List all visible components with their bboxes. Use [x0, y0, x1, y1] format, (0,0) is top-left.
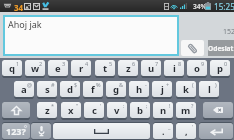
button[interactable]: c [84, 102, 104, 118]
staticText: ? [191, 102, 194, 109]
button[interactable]: h [129, 81, 149, 97]
staticText: b [137, 104, 144, 117]
staticText: m [181, 104, 191, 117]
staticText: n [160, 104, 167, 117]
staticText: t [103, 62, 108, 75]
button[interactable]: z [37, 102, 57, 118]
staticText: 6 [132, 60, 136, 67]
button[interactable]: o [187, 60, 207, 76]
staticText: c [92, 104, 97, 117]
button[interactable]: t [95, 60, 115, 76]
button[interactable]: Backspace [203, 102, 233, 118]
staticText: Odeslat [208, 44, 234, 53]
staticText: % [96, 81, 101, 88]
staticText: 9 [201, 60, 205, 67]
staticText: 123? [6, 125, 26, 137]
button[interactable]: r [71, 60, 91, 76]
staticText: _ [168, 123, 171, 130]
button[interactable]: u [141, 60, 161, 76]
staticText: & [119, 81, 124, 88]
staticText: . [162, 125, 165, 137]
staticText: j [161, 83, 164, 96]
button[interactable]: l [199, 81, 219, 97]
staticText: 1 [16, 60, 20, 67]
button[interactable]: e [48, 60, 68, 76]
staticText: k [183, 83, 189, 96]
staticText: , [185, 125, 188, 137]
button[interactable]: v [107, 102, 127, 118]
staticText: q [9, 62, 16, 75]
button[interactable]: j [152, 81, 172, 97]
button[interactable]: d [60, 81, 80, 97]
button[interactable]: n [153, 102, 173, 118]
staticText: r [79, 62, 84, 75]
staticText: Ahoj jak [8, 18, 42, 30]
staticText: + [166, 81, 170, 88]
staticText: i [173, 62, 176, 75]
staticText: 34% [193, 2, 207, 11]
staticText: @ [27, 81, 32, 88]
staticText: w [31, 62, 40, 75]
button[interactable]: w [25, 60, 45, 76]
button[interactable]: x [61, 102, 81, 118]
button[interactable]: m [176, 102, 196, 118]
button[interactable]: k [176, 81, 196, 97]
button[interactable]: q [2, 60, 22, 76]
staticText: p [217, 62, 224, 75]
button[interactable]: g [106, 81, 126, 97]
staticText: 8 [178, 60, 182, 67]
button[interactable]: Enter [199, 123, 233, 139]
staticText: e [55, 62, 61, 75]
staticText: ( [192, 81, 194, 88]
staticText: f [91, 83, 95, 96]
staticText: 152 [223, 27, 234, 37]
staticText: ) [215, 81, 217, 88]
staticText: 0 [224, 60, 228, 67]
staticText: * [51, 102, 55, 109]
staticText: # [51, 81, 55, 88]
button[interactable]: i [164, 60, 184, 76]
staticText: 2 [39, 60, 43, 67]
button[interactable]: z [118, 60, 138, 76]
staticText: $ [74, 81, 78, 88]
button[interactable]: Space [53, 123, 150, 139]
staticText: : [123, 102, 125, 109]
button[interactable]: , [176, 123, 196, 139]
staticText: - [145, 81, 147, 88]
button[interactable]: 123? [2, 123, 30, 139]
button[interactable]: Microphone [31, 123, 51, 139]
staticText: 7 [155, 60, 159, 67]
button[interactable]: Attach [181, 40, 204, 56]
staticText: 4 [85, 60, 89, 67]
staticText: 15:25 [214, 1, 234, 12]
staticText: a [21, 83, 27, 96]
staticText: ! [169, 102, 171, 109]
staticText: s [45, 83, 50, 96]
button[interactable]: s [37, 81, 57, 97]
staticText: v [114, 104, 120, 117]
staticText: h [136, 83, 143, 96]
button[interactable]: f [83, 81, 103, 97]
staticText: u [148, 62, 155, 75]
staticText: d [67, 83, 74, 96]
staticText: ; [146, 102, 148, 109]
staticText: x [68, 104, 74, 117]
staticText: ' [100, 102, 102, 109]
button[interactable]: Ahoj jak [3, 15, 179, 56]
button[interactable]: Shift [2, 102, 30, 118]
staticText: 3 [62, 60, 66, 67]
staticText: ' [192, 123, 194, 130]
staticText: 5 [109, 60, 113, 67]
button[interactable]: b [130, 102, 150, 118]
staticText: l [208, 83, 211, 96]
staticText: g [113, 83, 120, 96]
staticText: o [194, 62, 200, 75]
staticText: z [126, 62, 131, 75]
button[interactable]: a [14, 81, 34, 97]
button[interactable]: Odeslat [208, 40, 234, 56]
staticText: 34 [14, 2, 24, 13]
button[interactable]: p [210, 60, 230, 76]
staticText: " [76, 102, 79, 109]
button[interactable]: . [153, 123, 173, 139]
staticText: z [45, 104, 50, 117]
